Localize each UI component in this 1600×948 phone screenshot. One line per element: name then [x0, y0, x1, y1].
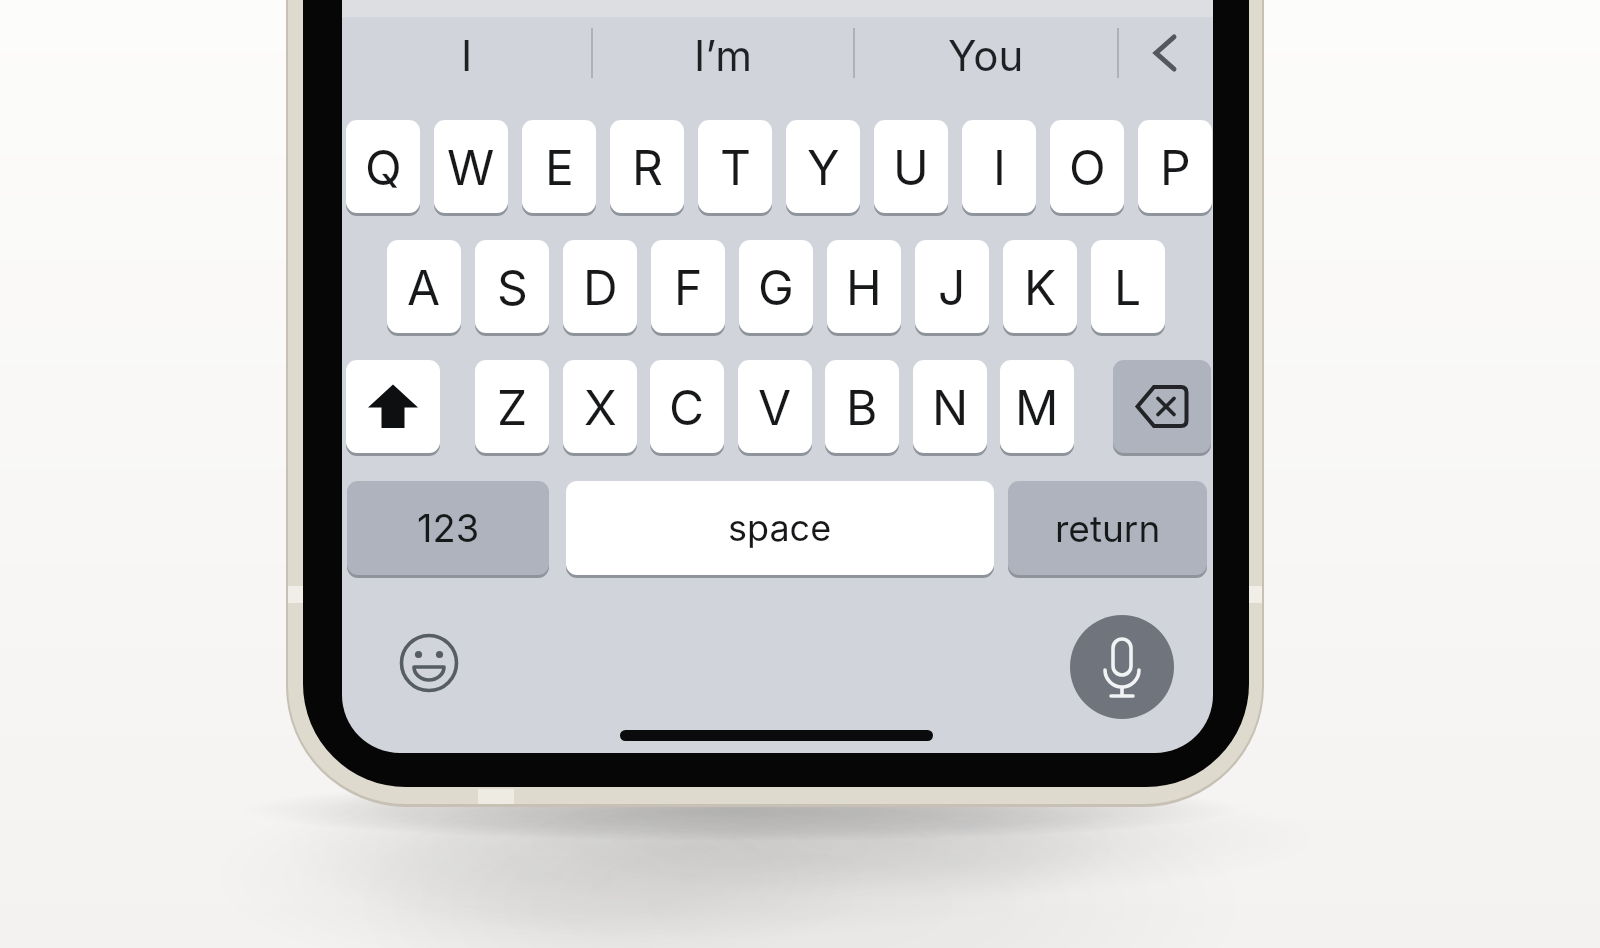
button[interactable]	[394, 628, 464, 698]
button[interactable]: X	[563, 360, 637, 453]
button[interactable]: F	[651, 240, 725, 333]
button[interactable]: J	[915, 240, 989, 333]
staticText: J	[938, 258, 966, 316]
button[interactable]	[1113, 360, 1211, 453]
staticText: X	[584, 378, 617, 436]
button[interactable]	[1070, 615, 1174, 719]
button[interactable]: A	[387, 240, 461, 333]
button[interactable]: O	[1050, 120, 1124, 213]
button[interactable]: U	[874, 120, 948, 213]
staticText: B	[846, 378, 878, 436]
button[interactable]: E	[522, 120, 596, 213]
button[interactable]: You	[854, 9, 1118, 101]
button[interactable]: space	[566, 481, 994, 575]
button[interactable]: R	[610, 120, 684, 213]
button[interactable]: P	[1138, 120, 1212, 213]
button[interactable]: D	[563, 240, 637, 333]
staticText: I	[993, 138, 1006, 196]
staticText: Z	[497, 378, 528, 436]
staticText: P	[1160, 138, 1191, 196]
staticText: N	[932, 378, 969, 436]
staticText: H	[846, 258, 882, 316]
staticText: I	[461, 30, 473, 81]
staticText: Q	[365, 138, 402, 196]
staticText: A	[407, 258, 441, 316]
button[interactable]: S	[475, 240, 549, 333]
button[interactable]: C	[650, 360, 724, 453]
staticText: L	[1114, 258, 1142, 316]
staticText: G	[758, 258, 794, 316]
staticText: space	[728, 506, 832, 550]
staticText: return	[1055, 506, 1161, 551]
button[interactable]: V	[738, 360, 812, 453]
staticText: I’m	[694, 30, 753, 81]
staticText: 123	[417, 505, 480, 551]
button[interactable]: Q	[346, 120, 420, 213]
staticText: You	[948, 30, 1024, 81]
button[interactable]: N	[913, 360, 987, 453]
staticText: V	[758, 378, 792, 436]
button[interactable]: B	[825, 360, 899, 453]
button[interactable]: W	[434, 120, 508, 213]
button[interactable]: H	[827, 240, 901, 333]
button[interactable]: return	[1008, 481, 1207, 575]
button[interactable]: I	[342, 9, 592, 101]
button[interactable]: L	[1091, 240, 1165, 333]
staticText: T	[720, 138, 751, 196]
staticText: U	[893, 138, 929, 196]
button[interactable]: I	[962, 120, 1036, 213]
button[interactable]: Y	[786, 120, 860, 213]
button[interactable]: K	[1003, 240, 1077, 333]
staticText: Y	[807, 138, 840, 196]
staticText: D	[583, 258, 618, 316]
staticText: O	[1069, 138, 1106, 196]
button[interactable]: I’m	[592, 9, 854, 101]
staticText: M	[1015, 378, 1059, 436]
button[interactable]: Z	[475, 360, 549, 453]
button[interactable]: G	[739, 240, 813, 333]
button[interactable]: 123	[347, 481, 549, 575]
staticText: K	[1024, 258, 1057, 316]
staticText: W	[447, 138, 495, 196]
staticText: S	[497, 258, 528, 316]
button[interactable]	[1118, 17, 1213, 109]
button[interactable]: T	[698, 120, 772, 213]
staticText: F	[674, 258, 703, 316]
staticText: C	[669, 378, 705, 436]
button[interactable]	[346, 360, 440, 453]
button[interactable]: M	[1000, 360, 1074, 453]
staticText: E	[545, 138, 574, 196]
staticText: R	[632, 138, 663, 196]
